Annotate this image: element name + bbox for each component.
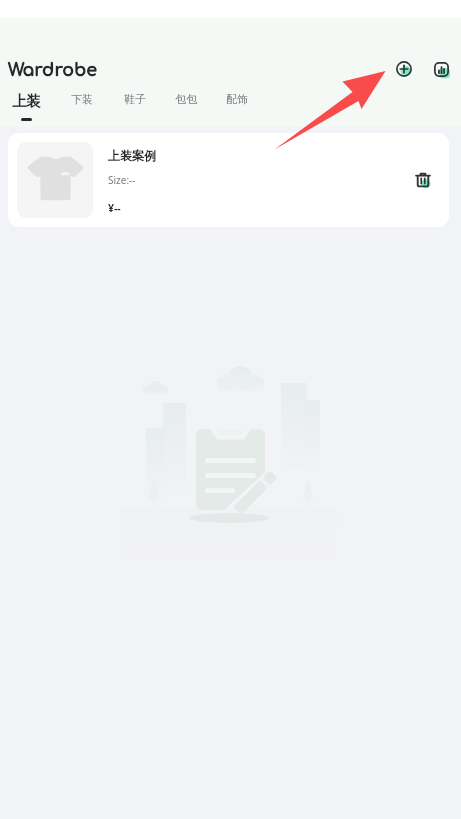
staticText: 配饰 xyxy=(226,92,248,106)
staticText: 包包 xyxy=(175,92,197,106)
button[interactable]: 下装 xyxy=(71,92,93,106)
button[interactable]: Add item xyxy=(389,54,419,84)
button[interactable]: 配饰 xyxy=(226,92,248,106)
button[interactable]: 上装案例 xyxy=(8,133,449,227)
staticText: 下装 xyxy=(71,92,93,106)
button[interactable]: 上装 xyxy=(12,92,41,121)
staticText: ¥-- xyxy=(108,201,121,215)
staticText: Wardrobe xyxy=(8,61,98,81)
button[interactable]: Delete xyxy=(404,161,442,199)
button[interactable]: Statistics xyxy=(426,54,456,84)
staticText: 上装 xyxy=(12,92,41,110)
staticText: Size:-- xyxy=(108,173,136,187)
button[interactable]: 包包 xyxy=(175,92,197,106)
button[interactable]: 鞋子 xyxy=(124,92,146,106)
staticText: 鞋子 xyxy=(124,92,146,106)
staticText: 上装案例 xyxy=(108,148,156,163)
